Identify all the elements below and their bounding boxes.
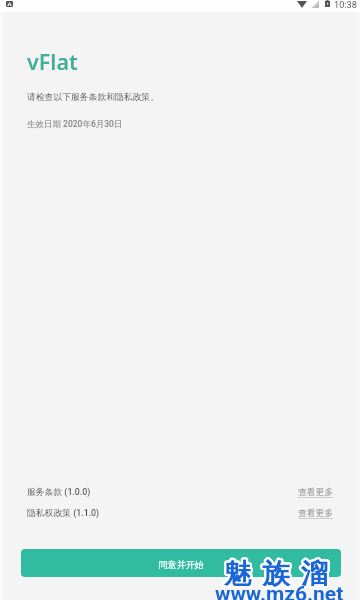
staticText: 查看更多 bbox=[298, 487, 334, 498]
staticText: 魅 族 溜 bbox=[224, 559, 331, 594]
staticText: 魅 族 溜 bbox=[223, 555, 330, 590]
staticText: 魅 族 溜 bbox=[224, 557, 331, 592]
staticText: 魅 族 溜 bbox=[226, 556, 333, 591]
staticText: 魅 族 溜 bbox=[224, 555, 331, 590]
staticText: www.mz6.net bbox=[215, 582, 344, 600]
staticText: 魅 族 溜 bbox=[224, 558, 331, 593]
other: Mobile signal bbox=[312, 1, 319, 8]
staticText: 请检查以下服务条款和隐私政策。 bbox=[27, 92, 159, 103]
staticText: 魅 族 溜 bbox=[222, 557, 329, 592]
staticText: 10:38 bbox=[334, 0, 357, 10]
staticText: 同意并开始 bbox=[158, 559, 204, 571]
staticText: 魅 族 溜 bbox=[225, 555, 332, 590]
staticText: 魅 族 溜 bbox=[224, 556, 331, 591]
staticText: vFlat bbox=[27, 47, 78, 76]
staticText: 魅 族 溜 bbox=[223, 558, 330, 593]
staticText: 隐私权政策 (1.1.0) bbox=[27, 508, 100, 519]
staticText: 生效日期 2020年6月30日 bbox=[27, 119, 123, 130]
other: Wi-Fi bbox=[297, 1, 307, 8]
staticText: 魅 族 溜 bbox=[222, 558, 329, 593]
staticText: 魅 族 溜 bbox=[225, 558, 332, 593]
staticText: 魅 族 溜 bbox=[222, 556, 329, 591]
staticText: 魅 族 溜 bbox=[223, 559, 330, 594]
other: Battery bbox=[325, 0, 330, 7]
staticText: 魅 族 溜 bbox=[225, 556, 332, 591]
staticText: 服务条款 (1.0.0) bbox=[27, 487, 91, 498]
staticText: 魅 族 溜 bbox=[223, 556, 330, 591]
staticText: 魅 族 溜 bbox=[223, 557, 330, 592]
other: Notification bbox=[6, 1, 13, 7]
button[interactable]: 同意并开始 bbox=[21, 549, 341, 577]
staticText: 魅 族 溜 bbox=[225, 559, 332, 594]
staticText: 魅 族 溜 bbox=[225, 557, 332, 592]
staticText: 查看更多 bbox=[298, 508, 334, 519]
button[interactable]: 隐私权政策 (1.1.0) bbox=[0, 506, 360, 524]
button[interactable]: 服务条款 (1.0.0) bbox=[0, 485, 360, 503]
staticText: 魅 族 溜 bbox=[226, 557, 333, 592]
staticText: 魅 族 溜 bbox=[226, 558, 333, 593]
